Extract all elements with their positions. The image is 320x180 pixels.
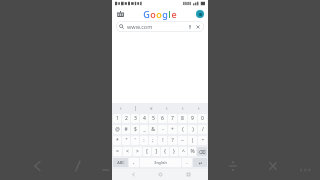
staticText: _ (143, 126, 146, 133)
button[interactable]: 5 (149, 114, 157, 123)
staticText: 7 (171, 115, 174, 122)
button[interactable]: @ (113, 125, 121, 134)
staticText: " (125, 137, 128, 144)
staticText: 2 (125, 115, 128, 122)
button[interactable]: < (123, 147, 132, 156)
staticText: o (150, 8, 156, 20)
staticText: : (143, 137, 145, 144)
staticText: { (164, 148, 166, 155)
button[interactable]: ⌫ (197, 147, 207, 156)
button[interactable]: | (128, 104, 143, 113)
button[interactable]: . (182, 158, 192, 167)
button[interactable]: slash (70, 158, 86, 174)
button[interactable]: * (113, 136, 121, 145)
button[interactable]: ; (149, 136, 157, 145)
button[interactable]: 1 (113, 114, 121, 123)
staticText: 3 (134, 115, 137, 122)
button[interactable]: prev (30, 158, 46, 174)
button[interactable]: = (113, 147, 122, 156)
staticText: ~ (181, 137, 184, 144)
button[interactable]: > (133, 147, 142, 156)
button[interactable]: Account (196, 10, 204, 18)
staticText: | (191, 137, 194, 144)
staticText: ; (152, 137, 154, 144)
button[interactable]: ~ (178, 136, 187, 145)
button[interactable]: 7 (168, 114, 177, 123)
button[interactable]: ‹ (159, 104, 175, 113)
button[interactable]: " (122, 136, 130, 145)
staticText: [ (146, 148, 148, 155)
button[interactable]: ( (178, 125, 187, 134)
button[interactable]: + (168, 125, 177, 134)
button[interactable]: [ (143, 147, 151, 156)
staticText: ! (162, 137, 164, 144)
staticText: | (134, 105, 137, 112)
button[interactable]: | (188, 136, 197, 145)
staticText: G (143, 8, 150, 20)
staticText: › (198, 105, 200, 112)
button[interactable]: Menu (116, 10, 125, 19)
button[interactable]: › (191, 104, 207, 113)
staticText: ↵ (198, 160, 203, 166)
button[interactable]: www.com (116, 21, 204, 32)
button[interactable]: : (140, 136, 148, 145)
button[interactable]: Voice search (187, 24, 193, 30)
button[interactable]: % (188, 147, 196, 156)
button[interactable]: dash (98, 162, 114, 178)
button[interactable]: ↵ (193, 158, 207, 167)
button[interactable]: { (161, 147, 169, 156)
button[interactable]: 4 (140, 114, 148, 123)
staticText: % (190, 148, 195, 155)
button[interactable]: ABC (113, 158, 128, 167)
button[interactable]: Home (153, 170, 167, 179)
staticText: English (154, 160, 167, 165)
staticText: 5 (152, 115, 155, 122)
staticText: ( (182, 126, 184, 133)
button[interactable]: Back (126, 170, 140, 179)
button[interactable]: $ (131, 125, 139, 134)
button[interactable]: & (149, 125, 157, 134)
button[interactable]: 8 (178, 114, 187, 123)
staticText: . (186, 159, 188, 166)
staticText: } (173, 148, 175, 155)
button[interactable]: ) (188, 125, 197, 134)
staticText: ) (192, 126, 194, 133)
button[interactable]: ‹ (175, 104, 191, 113)
staticText: • (202, 137, 204, 144)
staticText: l (168, 8, 171, 20)
button[interactable]: divide (225, 158, 241, 174)
button[interactable]: _ (140, 125, 148, 134)
button[interactable]: ' (131, 136, 139, 145)
button[interactable]: 3 (131, 114, 139, 123)
button[interactable]: # (122, 125, 130, 134)
button[interactable]: times (265, 158, 281, 174)
staticText: e (171, 8, 177, 20)
staticText: ‹ (182, 105, 184, 112)
button[interactable]: 0 (198, 114, 207, 123)
button[interactable]: ? (168, 136, 177, 145)
button[interactable]: Clear (195, 24, 201, 30)
staticText: ? (171, 137, 174, 144)
button[interactable]: 6 (158, 114, 167, 123)
staticText: @ (115, 126, 120, 133)
button[interactable]: 9 (188, 114, 197, 123)
button[interactable]: } (170, 147, 178, 156)
button[interactable]: ‹ (113, 104, 128, 113)
button[interactable]: ] (152, 147, 160, 156)
button[interactable]: / (198, 125, 207, 134)
staticText: ⌫ (198, 149, 206, 155)
button[interactable]: 2 (122, 114, 130, 123)
button[interactable]: , (129, 158, 139, 167)
staticText: & (151, 126, 155, 133)
button[interactable]: « (143, 104, 159, 113)
button[interactable]: ^ (179, 147, 187, 156)
button[interactable]: • (198, 136, 207, 145)
button[interactable]: English (140, 158, 181, 167)
button[interactable]: - (158, 125, 167, 134)
button[interactable]: ! (158, 136, 167, 145)
staticText: ' (134, 137, 136, 144)
staticText: = (116, 148, 119, 155)
staticText: + (171, 126, 174, 133)
button[interactable]: Recents (181, 170, 195, 179)
